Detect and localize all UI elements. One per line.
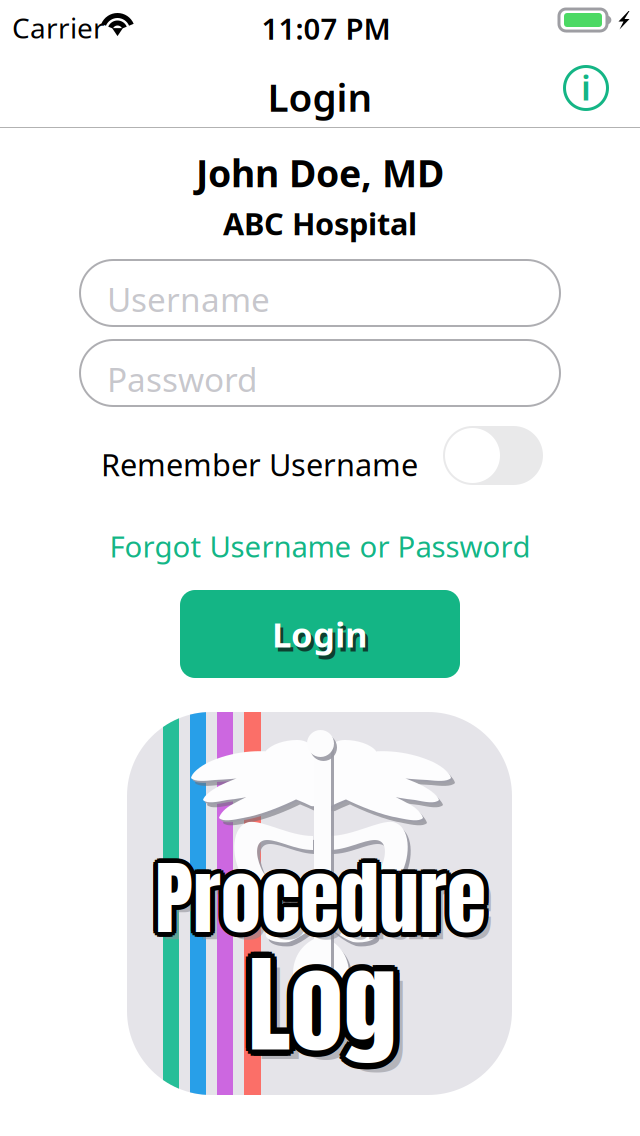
staticText: Procedure [152, 838, 483, 958]
staticText: Procedure [160, 839, 491, 959]
staticText: Procedure [160, 837, 491, 957]
staticText: Procedure [157, 840, 488, 960]
staticText: Log [252, 920, 401, 1080]
staticText: Procedure [154, 843, 485, 963]
staticText: Procedure [150, 839, 481, 959]
staticText: Procedure [155, 835, 486, 956]
staticText: Log [244, 928, 393, 1089]
staticText: Procedure [153, 836, 484, 956]
staticText: Log [249, 918, 398, 1078]
staticText: Log [248, 920, 397, 1081]
staticText: Procedure [152, 835, 483, 955]
button[interactable]: Forgot Username or Password [90, 520, 550, 572]
button[interactable]: Password [80, 340, 560, 406]
staticText: Login [267, 71, 372, 122]
staticText: Log [257, 933, 406, 1094]
staticText: Log [249, 930, 398, 1091]
staticText: John Doe, MD [196, 148, 444, 198]
staticText: Password [107, 357, 258, 401]
staticText: Carrier [12, 9, 105, 46]
staticText: Log [251, 927, 400, 1087]
button[interactable]: Username [80, 260, 560, 326]
staticText: i [581, 64, 591, 110]
staticText: Procedure [157, 836, 488, 956]
staticText: Log [244, 924, 393, 1085]
staticText: Username [107, 277, 270, 321]
staticText: Log [242, 925, 391, 1086]
staticText: Login [275, 615, 371, 661]
staticText: Log [246, 930, 395, 1091]
staticText: Log [254, 922, 403, 1083]
staticText: Procedure [158, 835, 489, 955]
staticText: Log [252, 928, 401, 1089]
staticText: Procedure [156, 833, 487, 954]
staticText: 11:07 PM [261, 9, 390, 48]
staticText: Log [242, 922, 391, 1083]
staticText: Procedure [150, 837, 481, 957]
staticText: Procedure [155, 838, 486, 958]
staticText: Log [245, 921, 394, 1082]
staticText: Procedure [154, 833, 485, 954]
staticText: Procedure [158, 838, 489, 958]
staticText: Procedure [153, 840, 484, 960]
staticText: Log [244, 920, 393, 1080]
staticText: Login [272, 611, 368, 657]
staticText: Log [251, 921, 400, 1082]
staticText: Procedure [152, 841, 483, 962]
staticText: ABC Hospital [223, 203, 417, 244]
staticText: Procedure [155, 841, 486, 961]
button[interactable]: Remember Username [443, 426, 543, 485]
staticText: Log [248, 928, 397, 1088]
button[interactable]: Login [180, 590, 460, 678]
staticText: Log [252, 924, 401, 1085]
staticText: Log [246, 918, 395, 1078]
staticText: Procedure [156, 843, 487, 963]
staticText: Forgot Username or Password [109, 526, 530, 565]
staticText: Log [254, 925, 403, 1086]
staticText: Remember Username [101, 444, 418, 485]
staticText: Log [248, 924, 397, 1085]
button[interactable]: Info [555, 57, 617, 119]
staticText: Procedure [162, 845, 493, 965]
staticText: Log [245, 927, 394, 1087]
staticText: Procedure [158, 841, 489, 962]
